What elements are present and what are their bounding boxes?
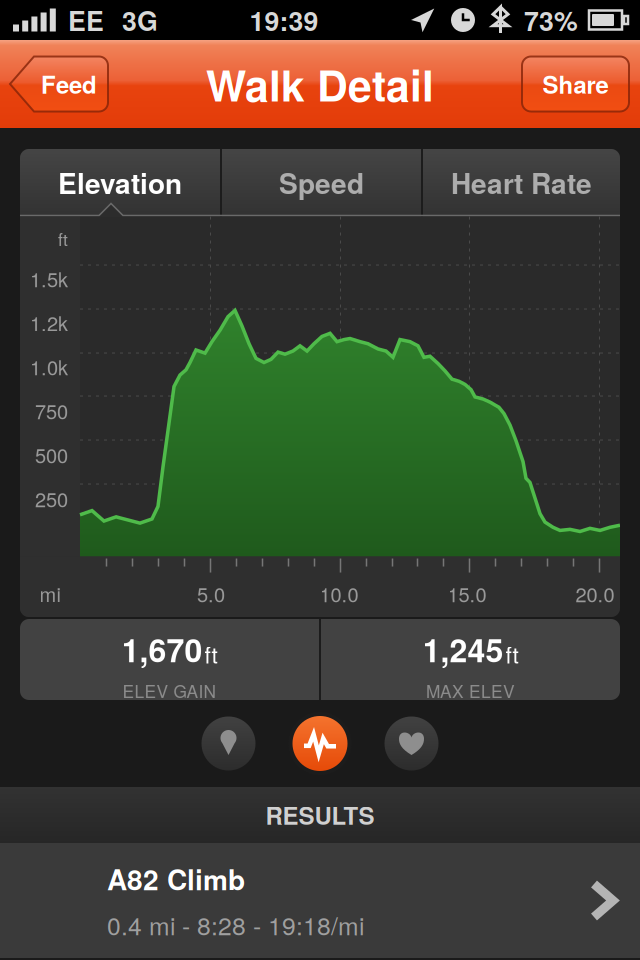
- staticText: 5.0: [197, 579, 225, 608]
- staticText: ELEV GAIN: [122, 678, 216, 703]
- button[interactable]: Speed: [222, 148, 421, 216]
- button[interactable]: A82 Climb: [0, 843, 640, 958]
- staticText: Walk Detail: [206, 53, 434, 115]
- staticText: Share: [542, 67, 608, 101]
- button[interactable]: Elevation: [20, 148, 220, 216]
- staticText: 1,245: [422, 626, 503, 672]
- button[interactable]: Map: [201, 716, 255, 770]
- staticText: ft: [204, 637, 217, 670]
- staticText: 750: [35, 396, 68, 425]
- staticText: 250: [35, 484, 68, 513]
- staticText: 1.2k: [30, 308, 68, 337]
- staticText: A82 Climb: [107, 859, 245, 899]
- button[interactable]: Feed: [10, 56, 108, 111]
- staticText: 10.0: [319, 579, 358, 608]
- button[interactable]: Share: [522, 56, 629, 111]
- staticText: 1.0k: [30, 352, 68, 381]
- staticText: EE: [68, 1, 104, 39]
- staticText: 73%: [524, 1, 578, 39]
- staticText: RESULTS: [265, 798, 374, 832]
- button[interactable]: Heart rate: [384, 716, 438, 770]
- staticText: Elevation: [58, 162, 182, 203]
- staticText: Heart Rate: [451, 162, 592, 203]
- button[interactable]: Elevation chart: [288, 712, 351, 775]
- staticText: 1.5k: [30, 264, 68, 293]
- staticText: 500: [35, 440, 68, 469]
- staticText: Feed: [41, 67, 97, 101]
- staticText: ft: [505, 637, 518, 670]
- staticText: 19:39: [249, 1, 318, 39]
- staticText: MAX ELEV: [426, 678, 515, 703]
- staticText: Speed: [279, 162, 364, 203]
- staticText: 3G: [122, 1, 158, 39]
- staticText: 20.0: [575, 579, 614, 608]
- staticText: ft: [58, 226, 68, 251]
- staticText: 0.4 mi - 8:28 - 19:18/mi: [107, 907, 364, 942]
- button[interactable]: Heart Rate: [423, 148, 620, 216]
- staticText: mi: [39, 579, 60, 608]
- staticText: 15.0: [447, 579, 486, 608]
- staticText: 1,670: [121, 626, 202, 672]
